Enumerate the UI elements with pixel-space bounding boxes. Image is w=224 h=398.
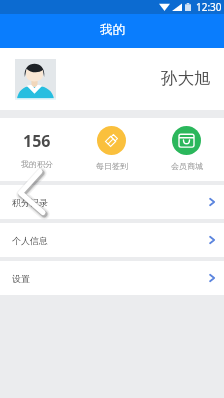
button[interactable]: 会员商城 [149,118,224,181]
button[interactable]: 积分记录 [0,185,224,219]
button[interactable]: 个人信息 [0,223,224,257]
staticText: 积分记录 [12,197,48,208]
staticText: 156 [23,130,51,152]
button[interactable]: 156 [0,118,74,181]
staticText: 我的积分 [21,159,53,169]
staticText: 每日签到 [96,161,128,171]
staticText: 会员商城 [171,161,203,171]
staticText: 我的 [100,22,125,38]
other: 每日签到 [97,126,126,155]
staticText: 设置 [12,273,30,284]
staticText: 孙大旭 [161,68,211,89]
button[interactable]: 孙大旭 [0,48,224,110]
staticText: 个人信息 [12,235,48,246]
staticText: 12:30 [196,0,222,13]
button[interactable]: 设置 [0,261,224,295]
button[interactable]: 每日签到 [74,118,149,181]
other: 会员商城 [172,126,201,155]
